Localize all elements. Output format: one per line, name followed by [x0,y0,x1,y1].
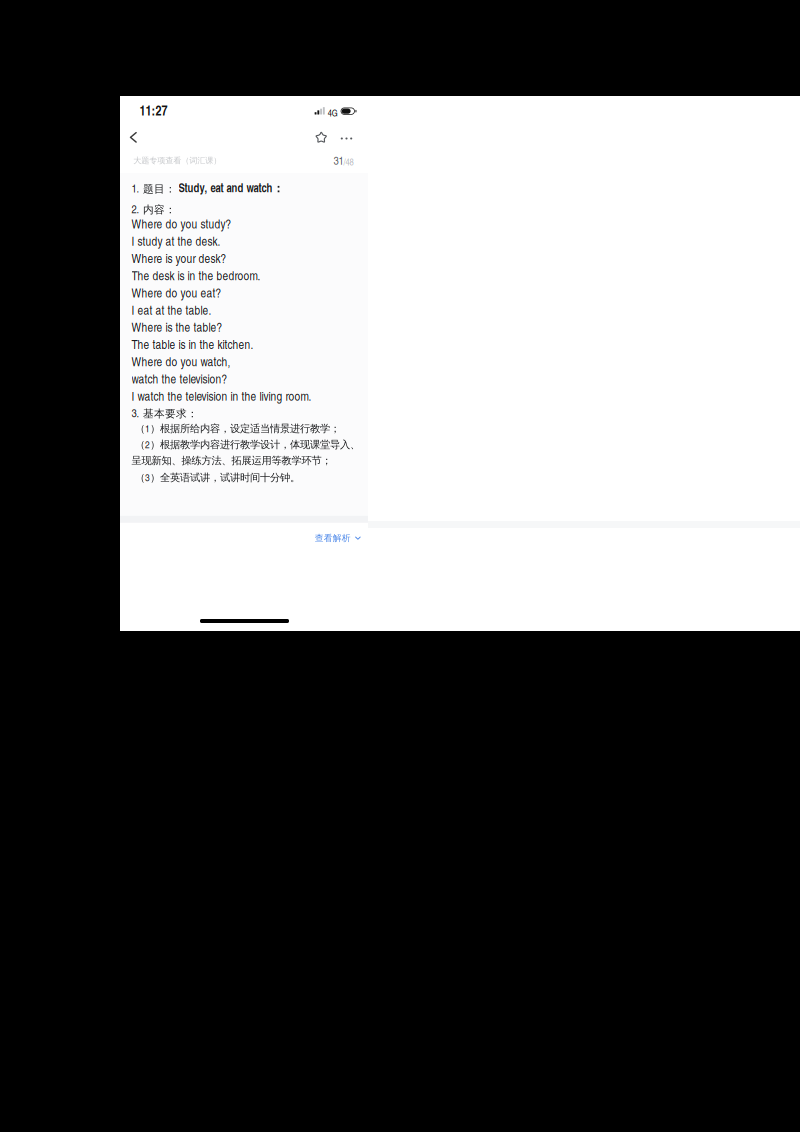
staticText: 内容： [143,203,176,216]
staticText: 1. [131,180,139,196]
staticText: The table is in the kitchen. [131,336,253,353]
staticText: Where do you eat? [131,284,221,301]
staticText: I study at the desk. [131,232,220,249]
staticText: watch the television? [131,370,227,387]
staticText: Where do you watch, [131,353,230,370]
staticText: （2）根据教学内容进行教学设计，体现课堂导入、 [135,437,360,451]
staticText: Study, eat and watch： [178,179,284,196]
staticText: 2. [131,201,139,216]
staticText: Where is your desk? [131,249,226,266]
button[interactable]: Back [120,124,146,150]
staticText: （1）根据所给内容，设定适当情景进行教学； [135,421,340,435]
button[interactable]: 查看解析 [309,529,367,548]
staticText: I eat at the table. [131,301,211,318]
staticText: 基本要求： [143,407,198,420]
staticText: Where is the table? [131,318,222,335]
staticText: 31 [333,152,343,168]
staticText: 题目： [143,182,176,196]
staticText: 4G [328,106,338,119]
staticText: 查看解析 [315,533,351,544]
staticText: /48 [343,155,353,168]
staticText: 大题专项查看（词汇课） [133,155,221,166]
staticText: 3. [131,405,139,420]
button[interactable]: More options [334,126,358,150]
staticText: 11:27 [140,101,168,120]
staticText: I watch the television in the living roo… [131,387,311,404]
button[interactable]: Add to favorites [309,126,333,150]
staticText: 呈现新知、操练方法、拓展运用等教学环节； [131,454,331,467]
staticText: Where do you study? [131,215,231,232]
staticText: （3）全英语试讲，试讲时间十分钟。 [135,470,300,484]
staticText: The desk is in the bedroom. [131,267,260,284]
